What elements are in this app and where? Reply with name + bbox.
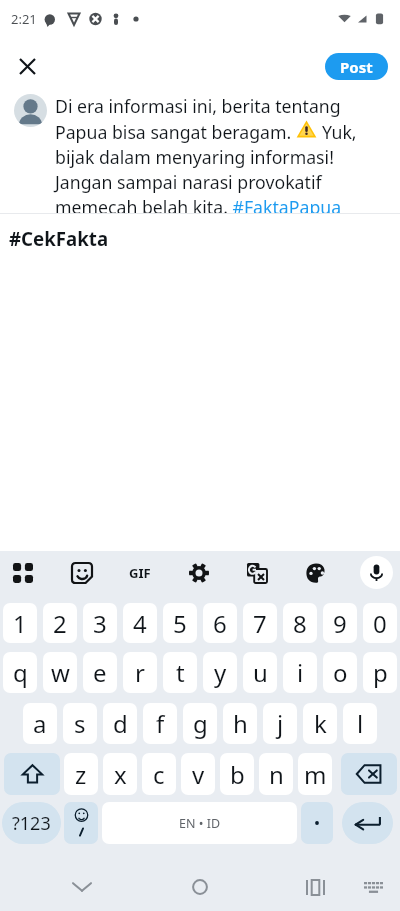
staticText: Papua bisa sangat beragam. xyxy=(55,120,292,144)
button[interactable]: t xyxy=(163,652,197,693)
button[interactable]: Emoji xyxy=(64,802,98,844)
button[interactable]: n xyxy=(259,753,293,795)
staticText: v xyxy=(192,758,205,791)
staticText: EN • ID xyxy=(179,815,221,832)
button[interactable]: Apps xyxy=(6,556,40,590)
staticText: c xyxy=(153,758,165,791)
staticText: l xyxy=(357,707,364,740)
button[interactable]: h xyxy=(223,703,257,744)
button[interactable]: c xyxy=(142,753,176,795)
staticText: b xyxy=(230,758,245,791)
staticText: o xyxy=(333,656,348,689)
button[interactable]: 5 xyxy=(163,603,197,643)
button[interactable]: q xyxy=(3,652,37,693)
staticText: #CekFakta xyxy=(9,226,109,251)
staticText: 2 xyxy=(53,607,67,640)
staticText: y xyxy=(214,656,227,689)
button[interactable]: Shift xyxy=(4,753,60,795)
button[interactable]: Translate xyxy=(240,556,274,590)
button[interactable]: o xyxy=(323,652,357,693)
button[interactable]: a xyxy=(23,703,57,744)
button[interactable]: w xyxy=(43,652,77,693)
button[interactable]: 8 xyxy=(283,603,317,643)
button[interactable]: k xyxy=(303,703,337,744)
button[interactable]: p xyxy=(363,652,397,693)
staticText: Di era informasi ini, berita tentang xyxy=(55,94,341,118)
button[interactable]: Recents xyxy=(293,874,337,900)
button[interactable]: Close xyxy=(7,48,47,84)
button[interactable]: f xyxy=(143,703,177,744)
button[interactable]: Enter xyxy=(342,802,393,844)
button[interactable]: d xyxy=(103,703,137,744)
button[interactable]: x xyxy=(103,753,137,795)
staticText: ?123 xyxy=(12,811,51,836)
staticText: m xyxy=(304,758,327,791)
staticText: 3 xyxy=(93,607,107,640)
staticText: Yuk, xyxy=(322,120,357,144)
button[interactable]: Voice input xyxy=(360,556,393,589)
staticText: 0 xyxy=(373,607,387,640)
button[interactable]: 9 xyxy=(323,603,357,643)
button[interactable]: e xyxy=(83,652,117,693)
staticText: 9 xyxy=(333,607,347,640)
button[interactable]: Backspace xyxy=(341,753,397,795)
staticText: g xyxy=(193,707,208,740)
button[interactable]: GIF xyxy=(123,556,157,590)
button[interactable]: ?123 xyxy=(2,802,61,844)
staticText: p xyxy=(373,656,388,689)
button[interactable]: i xyxy=(283,652,317,693)
staticText: 8 xyxy=(293,607,307,640)
button[interactable]: EN • ID xyxy=(102,802,297,844)
staticText: z xyxy=(75,758,87,791)
button[interactable]: 1 xyxy=(3,603,37,643)
button[interactable]: v xyxy=(181,753,215,795)
button[interactable]: 0 xyxy=(363,603,397,643)
staticText: 5 xyxy=(173,607,187,640)
button[interactable]: 2 xyxy=(43,603,77,643)
staticText: memecah belah kita. #FaktaPapua xyxy=(55,195,342,213)
button[interactable]: Settings xyxy=(182,556,216,590)
button[interactable]: Hide keyboard xyxy=(60,874,104,900)
staticText: Jangan sampai narasi provokatif xyxy=(55,170,322,194)
button[interactable]: g xyxy=(183,703,217,744)
button[interactable]: Themes xyxy=(299,556,333,590)
button[interactable]: y xyxy=(203,652,237,693)
staticText: d xyxy=(113,707,128,740)
button[interactable]: b xyxy=(220,753,254,795)
staticText: r xyxy=(135,656,145,689)
staticText: f xyxy=(156,707,165,740)
button[interactable]: 3 xyxy=(83,603,117,643)
staticText: a xyxy=(33,707,47,740)
button[interactable]: Home xyxy=(178,874,222,900)
staticText: w xyxy=(51,656,70,689)
staticText: 1 xyxy=(13,607,27,640)
staticText: t xyxy=(176,656,185,689)
button[interactable]: Period xyxy=(301,802,333,844)
staticText: u xyxy=(253,656,268,689)
button[interactable]: r xyxy=(123,652,157,693)
staticText: k xyxy=(314,707,327,740)
button[interactable]: 4 xyxy=(123,603,157,643)
button[interactable]: 6 xyxy=(203,603,237,643)
staticText: i xyxy=(297,656,304,689)
button[interactable]: 7 xyxy=(243,603,277,643)
staticText: GIF xyxy=(129,564,151,582)
button[interactable]: Stickers xyxy=(65,556,99,590)
staticText: 2:21 xyxy=(11,10,37,28)
staticText: Post xyxy=(340,57,373,77)
button[interactable]: j xyxy=(263,703,297,744)
staticText: j xyxy=(277,707,284,740)
staticText: h xyxy=(233,707,248,740)
button[interactable]: m xyxy=(298,753,332,795)
button[interactable]: z xyxy=(64,753,98,795)
staticText: 6 xyxy=(213,607,227,640)
button[interactable]: u xyxy=(243,652,277,693)
staticText: q xyxy=(13,656,28,689)
button[interactable]: Post xyxy=(325,53,388,80)
button[interactable]: s xyxy=(63,703,97,744)
staticText: x xyxy=(114,758,127,791)
staticText: s xyxy=(74,707,86,740)
staticText: 7 xyxy=(253,607,267,640)
button[interactable]: l xyxy=(343,703,377,744)
button[interactable]: Switch keyboard xyxy=(351,874,395,900)
